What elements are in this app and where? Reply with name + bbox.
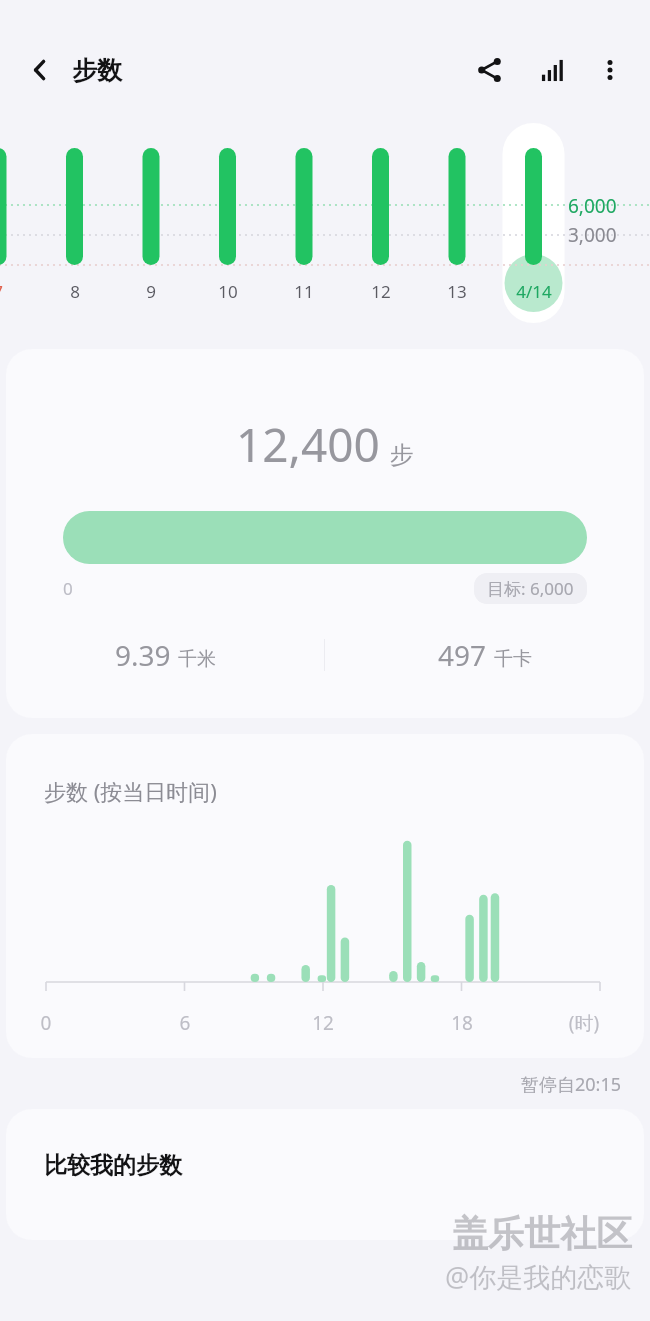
button[interactable]: Back xyxy=(14,44,66,96)
staticText: 目标: 6,000 xyxy=(487,577,574,600)
staticText: 9.39 xyxy=(115,636,171,674)
staticText: 12,400 xyxy=(236,413,380,476)
button[interactable]: More options xyxy=(582,42,638,98)
button[interactable]: 步数 (按当日时间) xyxy=(6,734,644,1058)
staticText: 千米 xyxy=(178,647,216,671)
staticText: 11 xyxy=(279,280,329,303)
button[interactable]: Share xyxy=(462,42,518,98)
staticText: 12 xyxy=(303,1010,343,1036)
staticText: 10 xyxy=(203,280,253,303)
staticText: 暂停自20:15 xyxy=(521,1072,622,1097)
staticText: 18 xyxy=(442,1010,482,1036)
button[interactable]: 比较我的步数 xyxy=(6,1109,644,1240)
staticText: 千卡 xyxy=(494,647,532,671)
button[interactable]: 9.39 xyxy=(6,636,324,674)
staticText: 6,000 xyxy=(568,193,617,219)
staticText: 6 xyxy=(165,1010,205,1036)
button[interactable]: 12,400 xyxy=(6,349,644,718)
staticText: 步数 (按当日时间) xyxy=(44,776,217,806)
staticText: 3,000 xyxy=(568,222,617,248)
staticText: 13 xyxy=(432,280,482,303)
staticText: 8 xyxy=(50,280,100,303)
staticText: 步 xyxy=(390,440,414,470)
button[interactable]: Chart xyxy=(524,42,580,98)
staticText: @你是我的恋歌 xyxy=(445,1258,632,1295)
staticText: 比较我的步数 xyxy=(44,1151,182,1180)
staticText: 0 xyxy=(26,1010,66,1036)
staticText: 步数 xyxy=(72,55,122,86)
staticText: (时) xyxy=(554,1010,614,1036)
staticText: 497 xyxy=(438,636,487,674)
staticText: 盖乐世社区 xyxy=(452,1211,632,1256)
button[interactable]: 497 xyxy=(325,636,644,674)
staticText: 9 xyxy=(126,280,176,303)
staticText: 0 xyxy=(63,577,73,600)
staticText: 7 xyxy=(0,280,23,303)
staticText: 12 xyxy=(356,280,406,303)
staticText: 4/14 xyxy=(494,280,574,303)
